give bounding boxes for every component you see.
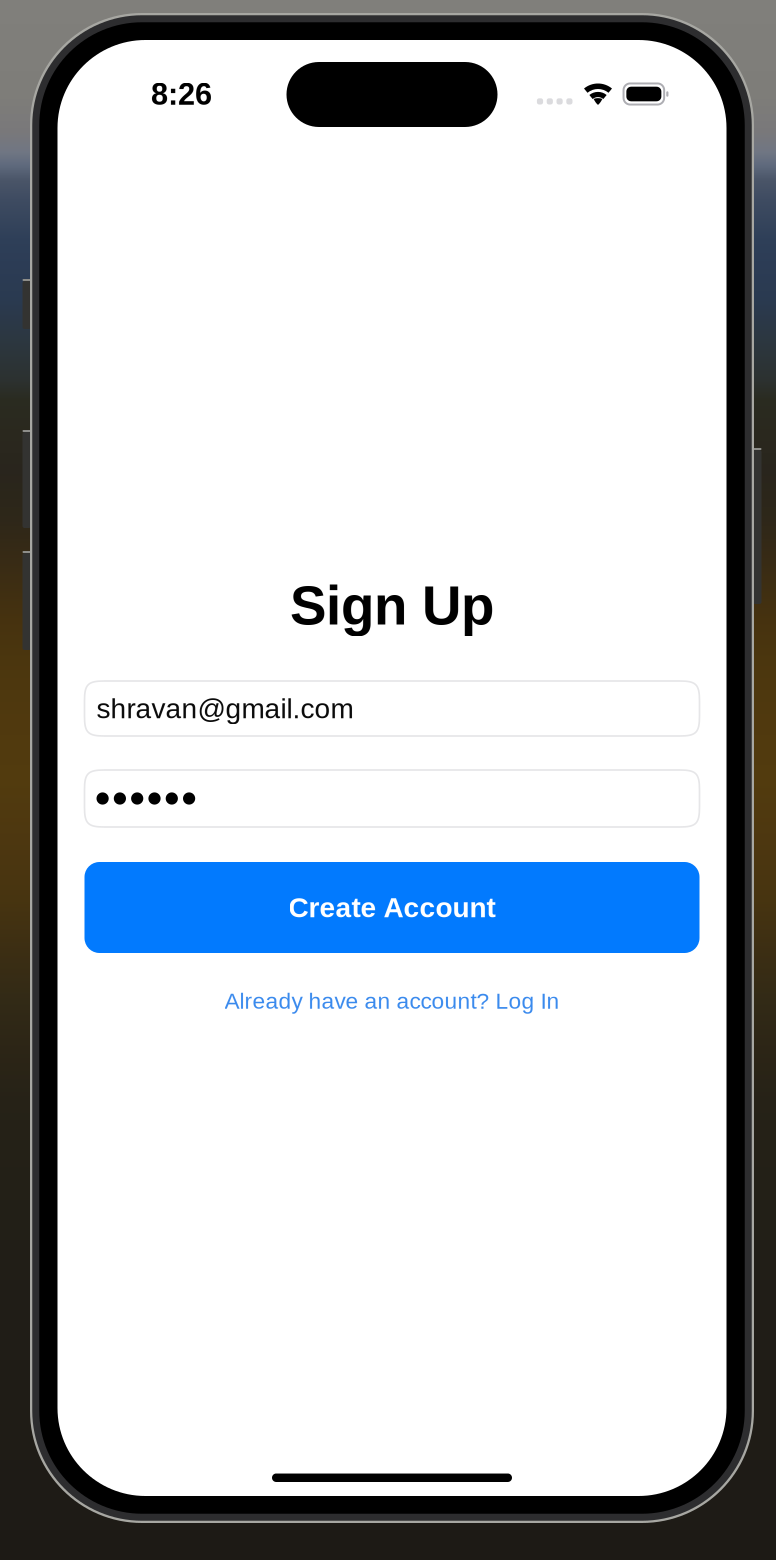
button[interactable]: Create Account: [84, 862, 699, 953]
staticText: Create Account: [288, 892, 495, 923]
button[interactable]: Already have an account? Log In: [84, 987, 699, 1015]
staticText: 8:26: [151, 77, 212, 111]
staticText: Sign Up: [290, 575, 494, 636]
staticText: shravan@gmail.com: [96, 693, 353, 724]
staticText: Already have an account? Log In: [224, 988, 559, 1014]
